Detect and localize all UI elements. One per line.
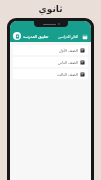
staticText: العام الدراسي xyxy=(58,34,79,39)
staticText: تطبيق المدرسة xyxy=(23,34,49,39)
button[interactable]: الصف الأول xyxy=(13,45,88,55)
button[interactable]: Calendar xyxy=(81,33,88,40)
button[interactable]: الصف الثالث xyxy=(13,69,88,79)
button[interactable]: Logo xyxy=(13,32,21,40)
staticText: ثانوي xyxy=(38,4,63,14)
button[interactable]: الصف الثاني xyxy=(13,57,88,67)
staticText: الصف الأول xyxy=(58,48,78,53)
staticText: الصف الثاني xyxy=(57,60,78,65)
staticText: الصف الثالث xyxy=(57,72,78,77)
